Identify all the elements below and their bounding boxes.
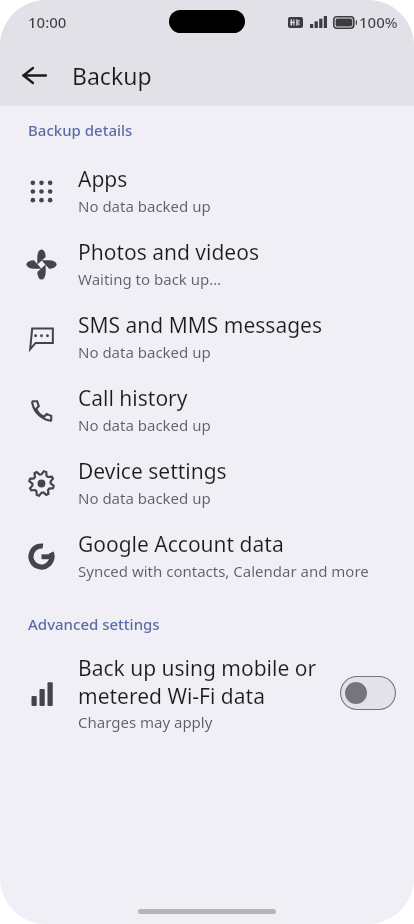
staticText: Backup <box>72 60 152 91</box>
staticText: Backup details <box>28 120 133 140</box>
staticText: Photos and videos <box>78 238 259 267</box>
button[interactable]: Back <box>10 51 58 99</box>
staticText: No data backed up <box>78 415 211 435</box>
button[interactable]: Back up using mobile data toggle <box>340 676 396 710</box>
button[interactable]: Photos and videos <box>0 227 414 300</box>
staticText: Synced with contacts, Calendar and more <box>78 561 369 581</box>
staticText: Device settings <box>78 457 227 486</box>
staticText: Call history <box>78 384 188 413</box>
staticText: No data backed up <box>78 488 211 508</box>
staticText: Google Account data <box>78 530 284 559</box>
staticText: No data backed up <box>78 342 211 362</box>
staticText: 10:00 <box>28 12 67 32</box>
staticText: Advanced settings <box>28 614 160 634</box>
button[interactable]: Google Account data <box>0 519 414 592</box>
staticText: Charges may apply <box>78 712 213 732</box>
staticText: 100% <box>359 12 398 32</box>
button[interactable]: SMS and MMS messages <box>0 300 414 373</box>
staticText: SMS and MMS messages <box>78 311 322 340</box>
staticText: Waiting to back up… <box>78 269 222 289</box>
button[interactable]: Apps <box>0 154 414 227</box>
button[interactable]: Back up using mobile or metered Wi-Fi da… <box>0 646 414 740</box>
staticText: No data backed up <box>78 196 211 216</box>
staticText: Apps <box>78 165 128 194</box>
staticText: Back up using mobile or metered Wi-Fi da… <box>78 654 330 710</box>
button[interactable]: Call history <box>0 373 414 446</box>
button[interactable]: Device settings <box>0 446 414 519</box>
